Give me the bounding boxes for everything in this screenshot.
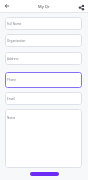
button[interactable]: Organization	[5, 34, 82, 47]
staticText: Phone	[7, 78, 17, 82]
button[interactable]: Email	[5, 92, 82, 105]
button[interactable]: Phone	[5, 72, 82, 88]
button[interactable]: Notes	[5, 109, 82, 168]
staticText: Notes	[7, 116, 16, 120]
staticText: Email	[7, 97, 15, 101]
staticText: My Qr	[38, 4, 50, 9]
staticText: Full Name	[7, 22, 22, 26]
button[interactable]: Back	[2, 1, 12, 11]
button[interactable]: Address	[5, 52, 82, 65]
staticText: Address	[7, 57, 19, 61]
button[interactable]: Share	[76, 2, 86, 12]
button[interactable]: Full Name	[5, 17, 82, 30]
staticText: Organization	[7, 39, 26, 43]
